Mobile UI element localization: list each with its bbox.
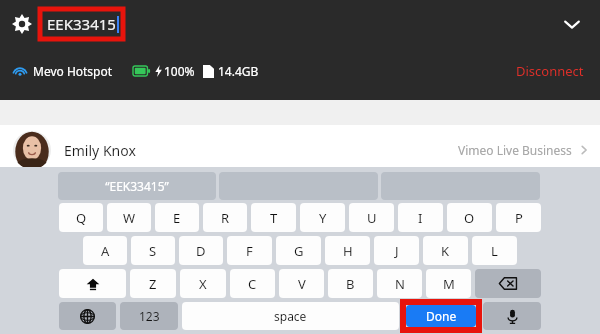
button[interactable]: N [377,269,422,298]
button[interactable]: 123 [120,302,178,330]
staticText: C [248,275,257,293]
staticText: EEK33415 [47,14,116,34]
staticText: Z [149,275,157,293]
staticText: space [274,308,307,324]
staticText: U [367,209,377,227]
staticText: R [221,209,230,227]
button[interactable]: X [180,269,226,298]
staticText: E [173,209,181,227]
button[interactable]: L [472,236,517,265]
staticText: Vimeo Live Business [458,142,572,158]
staticText: 123 [139,308,160,324]
staticText: Q [76,209,87,227]
staticText: W [123,209,136,227]
button[interactable]: O [447,203,492,232]
button[interactable]: E [155,203,199,232]
button[interactable]: A [83,236,127,265]
button[interactable]: Settings [7,9,37,39]
staticText: B [346,275,355,293]
button[interactable]: C [230,269,275,298]
button[interactable]: T [251,203,296,232]
button[interactable]: Q [59,203,103,232]
button[interactable]: Disconnect [512,58,588,84]
staticText: Disconnect [516,62,584,80]
button[interactable]: U [349,203,394,232]
button[interactable]: Collapse [557,9,587,39]
staticText: F [246,242,253,260]
staticText: S [149,242,157,260]
staticText: Emily Knox [64,141,136,160]
button[interactable]: space [182,302,399,330]
button[interactable]: Shift [59,269,126,298]
staticText: D [196,242,206,260]
button[interactable]: F [227,236,272,265]
button[interactable]: “EEK33415” [58,172,216,200]
button[interactable]: Change keyboard [59,302,116,330]
staticText: O [464,209,475,227]
button[interactable]: R [203,203,247,232]
staticText: I [418,209,423,227]
button[interactable]: Emily Knox [0,125,600,175]
staticText: “EEK33415” [105,178,169,194]
button[interactable]: W [107,203,151,232]
button[interactable]: S [131,236,175,265]
button[interactable]: K [423,236,468,265]
staticText: L [491,242,498,260]
button[interactable]: Done [406,305,476,327]
staticText: A [101,242,110,260]
button[interactable]: EEK33415 [40,9,123,39]
button[interactable]: D [179,236,223,265]
staticText: Y [319,209,327,227]
staticText: G [294,242,304,260]
staticText: P [515,209,523,227]
staticText: K [441,242,450,260]
staticText: N [395,275,405,293]
button[interactable]: Z [130,269,176,298]
button[interactable]: G [276,236,321,265]
button[interactable]: Backspace [475,269,541,298]
button[interactable]: V [279,269,324,298]
button[interactable]: Y [300,203,345,232]
staticText: H [343,242,353,260]
button[interactable]: I [398,203,443,232]
button[interactable]: B [328,269,373,298]
staticText: X [199,275,207,293]
staticText: 100% [164,63,195,79]
staticText: V [298,275,306,293]
button[interactable]: H [325,236,370,265]
staticText: J [395,242,399,260]
button[interactable]: P [496,203,541,232]
staticText: 14.4GB [218,63,259,79]
staticText: T [270,209,278,227]
button[interactable]: M [426,269,471,298]
button[interactable]: Dictate [483,302,541,330]
staticText: M [443,275,455,293]
staticText: Done [426,308,457,324]
button[interactable]: J [374,236,419,265]
staticText: Mevo Hotspot [33,63,113,79]
